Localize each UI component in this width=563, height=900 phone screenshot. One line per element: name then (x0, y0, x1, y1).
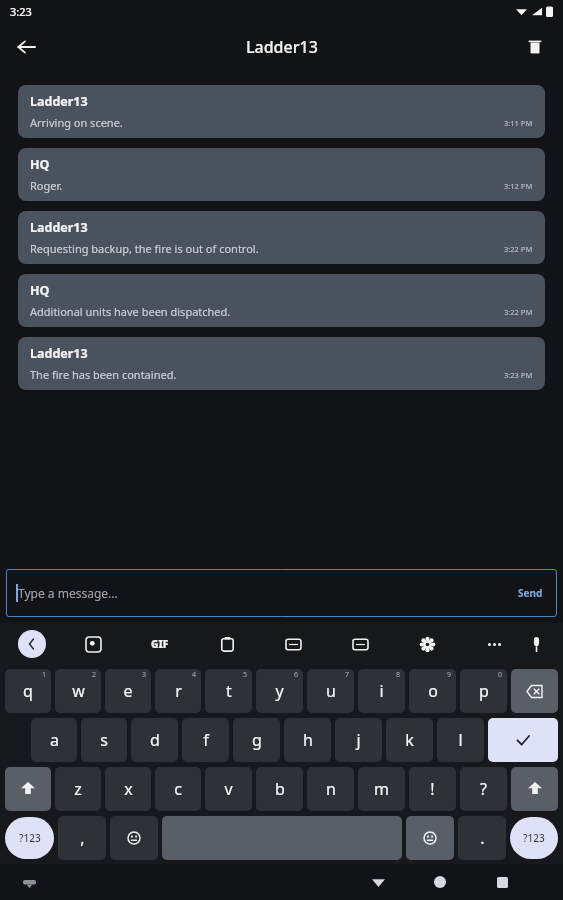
button[interactable]: ! (409, 767, 456, 811)
button[interactable]: Ladder13 (18, 85, 545, 138)
button[interactable]: Settings (414, 631, 440, 657)
staticText: ? (480, 778, 487, 800)
button[interactable]: Emoji picker (406, 816, 454, 860)
button[interactable]: Ladder13 (18, 211, 545, 264)
button[interactable]: Text editing (347, 631, 373, 657)
staticText: s (100, 729, 108, 751)
button[interactable]: Send (514, 582, 547, 604)
button[interactable]: GIF (147, 631, 173, 657)
button[interactable]: o (409, 669, 456, 713)
button[interactable]: k (386, 718, 433, 762)
staticText: 2 (92, 670, 97, 680)
staticText: 3:23 (10, 4, 32, 19)
staticText: HQ (30, 282, 50, 299)
staticText: n (326, 778, 336, 800)
button[interactable]: j (335, 718, 382, 762)
staticText: k (405, 729, 414, 751)
staticText: 3:11 PM (504, 118, 533, 128)
staticText: t (226, 680, 232, 702)
button[interactable]: , (58, 816, 106, 860)
staticText: Ladder13 (30, 219, 88, 236)
button[interactable]: Voice input (523, 631, 549, 657)
staticText: ?123 (523, 831, 545, 845)
staticText: 9 (447, 670, 452, 680)
staticText: 0 (498, 670, 503, 680)
staticText: Ladder13 (30, 345, 88, 362)
button[interactable]: b (256, 767, 303, 811)
button[interactable]: Shift (5, 767, 51, 811)
button[interactable]: ?123 (5, 817, 54, 859)
button[interactable]: e (105, 669, 151, 713)
button[interactable]: m (358, 767, 405, 811)
staticText: g (252, 729, 262, 751)
button[interactable]: Home (427, 869, 453, 895)
staticText: f (203, 729, 209, 751)
button[interactable]: a (31, 718, 77, 762)
staticText: h (303, 729, 313, 751)
staticText: i (379, 680, 384, 702)
staticText: o (428, 680, 438, 702)
staticText: Additional units have been dispatched. (30, 304, 231, 319)
button[interactable]: f (182, 718, 229, 762)
staticText: GIF (151, 637, 169, 651)
button[interactable]: ? (460, 767, 507, 811)
button[interactable]: c (155, 767, 201, 811)
button[interactable]: Type a message... (6, 569, 557, 617)
staticText: b (275, 778, 285, 800)
button[interactable]: s (81, 718, 127, 762)
button[interactable]: z (55, 767, 101, 811)
button[interactable]: i (358, 669, 405, 713)
button[interactable]: Shift (511, 767, 558, 811)
button[interactable]: h (284, 718, 331, 762)
staticText: 8 (396, 670, 401, 680)
button[interactable]: Enter (488, 718, 558, 762)
button[interactable]: Space (162, 816, 402, 860)
button[interactable]: d (131, 718, 178, 762)
button[interactable]: Back (6, 27, 46, 67)
button[interactable]: y (256, 669, 303, 713)
button[interactable]: w (55, 669, 101, 713)
button[interactable]: u (307, 669, 354, 713)
button[interactable]: ?123 (510, 817, 558, 859)
button[interactable]: Keyboard (18, 871, 40, 893)
button[interactable]: More (481, 631, 507, 657)
staticText: 3:23 PM (504, 370, 533, 380)
button[interactable]: Recents (489, 869, 515, 895)
staticText: . (480, 827, 485, 849)
staticText: 6 (294, 670, 299, 680)
button[interactable]: . (458, 816, 506, 860)
button[interactable]: Clipboard (214, 631, 240, 657)
button[interactable]: l (437, 718, 484, 762)
staticText: p (479, 680, 489, 702)
button[interactable]: Collapse (18, 630, 46, 658)
staticText: ! (430, 778, 435, 800)
button[interactable]: t (205, 669, 252, 713)
staticText: x (124, 778, 133, 800)
button[interactable]: n (307, 767, 354, 811)
button[interactable]: Back (365, 869, 391, 895)
button[interactable]: x (105, 767, 151, 811)
button[interactable]: q (5, 669, 51, 713)
button[interactable]: r (155, 669, 201, 713)
staticText: y (275, 680, 284, 702)
staticText: l (458, 729, 463, 751)
staticText: u (326, 680, 336, 702)
button[interactable]: p (460, 669, 507, 713)
staticText: z (74, 778, 82, 800)
button[interactable]: Stickers (80, 631, 106, 657)
staticText: The fire has been contained. (30, 367, 177, 382)
staticText: Ladder13 (30, 93, 88, 110)
button[interactable]: v (205, 767, 252, 811)
button[interactable]: Emoji (110, 816, 158, 860)
button[interactable]: HQ (18, 274, 545, 327)
staticText: 3 (142, 670, 147, 680)
staticText: Send (518, 586, 543, 600)
button[interactable]: g (233, 718, 280, 762)
button[interactable]: Ladder13 (18, 337, 545, 390)
button[interactable]: HQ (18, 148, 545, 201)
button[interactable]: Backspace (511, 669, 558, 713)
staticText: 3:22 PM (504, 244, 533, 254)
staticText: ?123 (19, 831, 41, 845)
button[interactable]: Delete (515, 27, 555, 67)
button[interactable]: Translate (280, 631, 306, 657)
